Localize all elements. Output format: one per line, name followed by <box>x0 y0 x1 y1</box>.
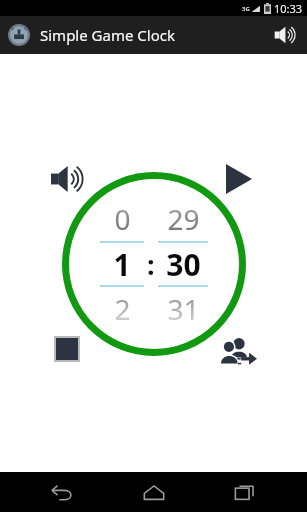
button[interactable]: 0 <box>100 194 144 334</box>
staticText: 3G <box>242 5 250 13</box>
button[interactable]: Recent apps <box>215 472 275 512</box>
button[interactable]: Start <box>216 156 262 202</box>
button[interactable]: Next player <box>214 326 264 376</box>
staticText: Simple Game Clock <box>40 25 175 45</box>
staticText: 31 <box>167 290 200 328</box>
button[interactable]: Home <box>124 472 184 512</box>
staticText: 1 <box>113 244 131 285</box>
button[interactable]: Sound <box>263 16 307 54</box>
staticText: 2 <box>114 290 131 328</box>
button[interactable]: Stop <box>44 326 90 372</box>
button[interactable]: Sound on <box>44 156 90 202</box>
button[interactable]: Back <box>32 472 92 512</box>
staticText: 29 <box>167 200 200 238</box>
staticText: 30 <box>166 244 201 285</box>
staticText: 10:33 <box>274 1 303 16</box>
staticText: 0 <box>114 200 131 238</box>
button[interactable]: 29 <box>158 194 208 334</box>
staticText: : <box>147 246 155 283</box>
